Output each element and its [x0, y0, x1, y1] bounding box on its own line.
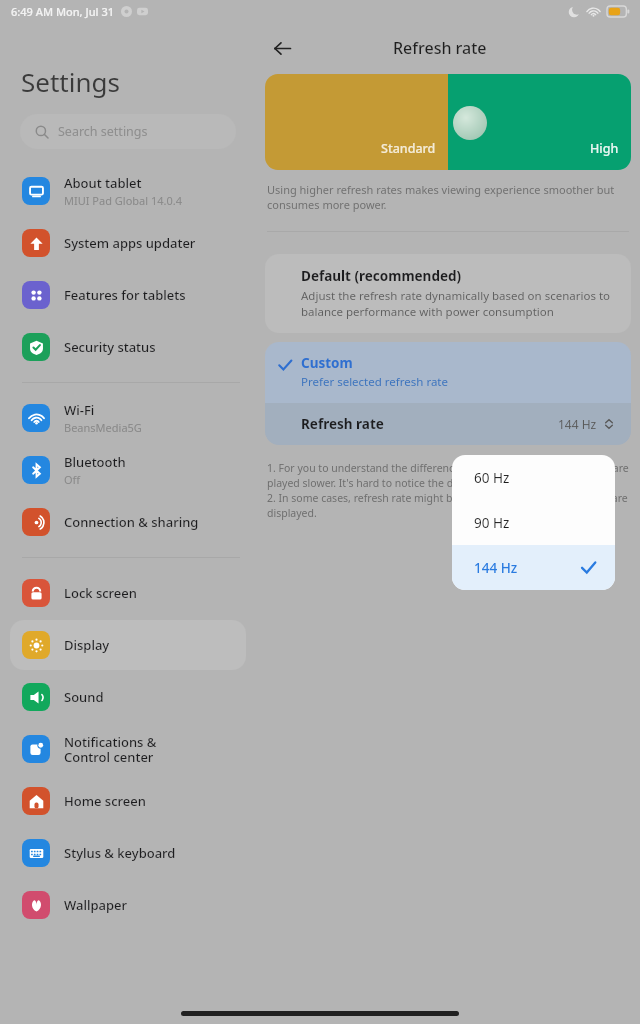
button[interactable]: Default (recommended) [265, 254, 631, 333]
staticText: Wi-Fi [64, 401, 95, 419]
button[interactable]: Search settings [20, 114, 236, 149]
staticText: System apps updater [64, 234, 196, 252]
button[interactable]: Custom [265, 342, 631, 403]
button[interactable]: Sound [10, 672, 246, 722]
button[interactable]: Wallpaper [10, 880, 246, 930]
staticText: Home screen [64, 792, 146, 810]
button[interactable]: Home screen [10, 776, 246, 826]
staticText: Standard [381, 140, 436, 157]
button[interactable]: About tablet [10, 166, 246, 216]
button[interactable]: 90 Hz [452, 500, 615, 545]
staticText: Connection & sharing [64, 513, 199, 531]
staticText: Stylus & keyboard [64, 844, 176, 862]
staticText: High [590, 140, 619, 157]
button[interactable]: Wi-Fi [10, 393, 246, 443]
button[interactable]: Stylus & keyboard [10, 828, 246, 878]
staticText: 144 Hz [474, 559, 518, 577]
staticText: Bluetooth [64, 453, 126, 471]
staticText: Security status [64, 338, 156, 356]
staticText: 1. For you to understand the difference … [267, 461, 629, 520]
staticText: 60 Hz [474, 469, 510, 487]
staticText: Using higher refresh rates makes viewing… [267, 182, 629, 212]
button[interactable]: Standard [265, 74, 631, 170]
staticText: Refresh rate [301, 415, 384, 433]
staticText: Search settings [58, 123, 148, 140]
staticText: Sound [64, 688, 104, 706]
button[interactable]: 144 Hz [452, 545, 615, 590]
staticText: Adjust the refresh rate dynamically base… [301, 288, 615, 319]
staticText: Off [64, 472, 81, 487]
staticText: BeansMedia5G [64, 420, 142, 435]
staticText: Refresh rate [393, 37, 487, 59]
button[interactable]: System apps updater [10, 218, 246, 268]
button[interactable]: Features for tablets [10, 270, 246, 320]
button[interactable]: 60 Hz [452, 455, 615, 500]
button[interactable]: Security status [10, 322, 246, 372]
staticText: Lock screen [64, 584, 137, 602]
button[interactable]: Lock screen [10, 568, 246, 618]
staticText: About tablet [64, 174, 142, 192]
staticText: 90 Hz [474, 514, 510, 532]
staticText: Default (recommended) [301, 267, 462, 285]
button[interactable]: Back [264, 30, 300, 66]
staticText: Display [64, 636, 110, 654]
staticText: Custom [301, 354, 353, 372]
staticText: MIUI Pad Global 14.0.4 [64, 193, 182, 208]
staticText: Wallpaper [64, 896, 127, 914]
button[interactable]: Display [10, 620, 246, 670]
staticText: Notifications & Control center [64, 733, 157, 766]
button[interactable]: Notifications & Control center [10, 724, 246, 774]
button[interactable]: Connection & sharing [10, 497, 246, 547]
staticText: Settings [21, 64, 120, 99]
button[interactable]: Bluetooth [10, 445, 246, 495]
staticText: Prefer selected refresh rate [301, 374, 448, 390]
staticText: Features for tablets [64, 286, 186, 304]
button[interactable]: Refresh rate [265, 403, 631, 445]
staticText: 6:49 AM Mon, Jul 31 [11, 4, 114, 19]
staticText: 144 Hz [558, 416, 597, 432]
